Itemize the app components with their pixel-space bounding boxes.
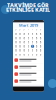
staticText: 8 <box>40 36 42 40</box>
staticText: 8 <box>15 45 17 48</box>
staticText: 8 <box>40 40 42 44</box>
staticText: P <box>36 28 38 32</box>
staticText: 8 <box>27 40 29 44</box>
staticText: 8 <box>15 36 17 40</box>
staticText: ETKİNLİĞE KATIL <box>6 6 50 13</box>
staticText: 8 <box>23 40 25 44</box>
staticText: 8 <box>23 36 25 40</box>
staticText: 8 <box>32 53 34 56</box>
staticText: Mart 2019 <box>19 23 38 28</box>
staticText: P <box>27 28 29 32</box>
staticText: 8 <box>19 40 21 44</box>
staticText: P <box>40 28 42 32</box>
staticText: 8 <box>19 32 21 36</box>
staticText: P <box>23 28 25 32</box>
staticText: 8 <box>32 32 34 36</box>
staticText: 8 <box>40 49 42 52</box>
staticText: 8 <box>15 40 17 44</box>
staticText: 8 <box>15 49 17 52</box>
staticText: 8 <box>15 53 17 56</box>
staticText: 8 <box>40 45 42 48</box>
staticText: 8 <box>32 40 34 44</box>
staticText: 8 <box>36 49 38 52</box>
staticText: 8 <box>27 45 29 48</box>
staticText: TAKVİMDE GÖR <box>7 2 49 9</box>
button[interactable] <box>13 71 44 78</box>
button[interactable] <box>13 64 44 71</box>
staticText: 8 <box>36 36 38 40</box>
staticText: 8 <box>27 53 29 56</box>
staticText: 8 <box>23 32 25 36</box>
staticText: 8 <box>27 32 29 36</box>
staticText: 8 <box>23 53 25 56</box>
button[interactable] <box>13 78 44 85</box>
staticText: 8 <box>36 45 38 48</box>
staticText: 8 <box>36 53 38 56</box>
staticText: 8 <box>23 49 25 52</box>
staticText: 8 <box>23 45 25 48</box>
staticText: 8 <box>32 49 34 52</box>
staticText: P <box>15 28 17 32</box>
staticText: 8 <box>19 53 21 56</box>
staticText: 8 <box>27 49 29 52</box>
staticText: P <box>32 28 34 32</box>
staticText: 8 <box>15 32 17 36</box>
staticText: P <box>19 28 21 32</box>
staticText: 8 <box>32 36 34 40</box>
button[interactable] <box>13 57 44 64</box>
staticText: 8 <box>36 32 38 36</box>
staticText: 8 <box>40 32 42 36</box>
staticText: 8 <box>19 36 21 40</box>
staticText: 8 <box>40 53 42 56</box>
staticText: 8 <box>19 45 21 48</box>
staticText: 8 <box>32 45 34 48</box>
staticText: 8 <box>27 36 29 40</box>
staticText: 8 <box>19 49 21 52</box>
staticText: 8 <box>36 40 38 44</box>
